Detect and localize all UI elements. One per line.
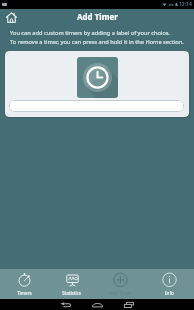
button[interactable]: Info	[145, 269, 194, 299]
button[interactable]: Home	[4, 10, 19, 25]
button[interactable]: Choose icon	[77, 57, 118, 98]
staticText: Statistics	[62, 290, 82, 296]
button[interactable]: Home	[81, 299, 113, 310]
button[interactable]: Timers	[0, 269, 48, 299]
staticText: To remove a timer, you can press and hol…	[10, 38, 184, 46]
button[interactable]: Timer label	[9, 100, 184, 112]
staticText: Timers	[17, 290, 32, 296]
staticText: You can add custom timers by adding a la…	[10, 29, 170, 37]
button[interactable]: Recent apps	[113, 299, 145, 310]
staticText: 12:14	[179, 1, 192, 8]
button[interactable]: Back	[49, 299, 81, 310]
staticText: Add Timer	[77, 11, 118, 22]
staticText: Info	[165, 290, 174, 296]
button[interactable]: Statistics	[48, 269, 96, 299]
staticText: Add Timer	[109, 290, 132, 296]
button[interactable]: Add Timer	[96, 269, 145, 299]
